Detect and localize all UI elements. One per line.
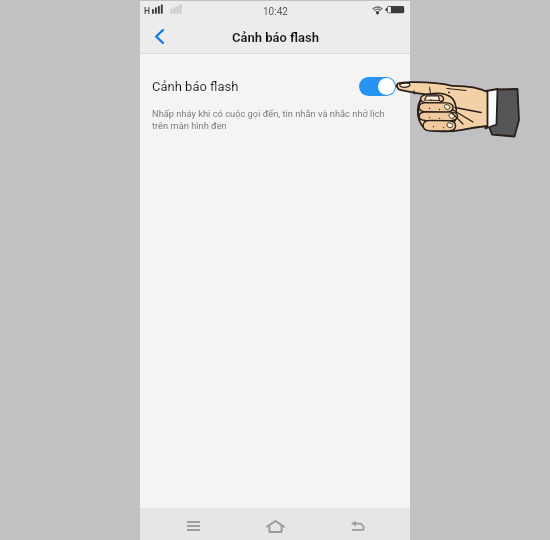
button[interactable]: Cảnh báo flash: [140, 70, 410, 103]
staticText: H: [144, 6, 151, 16]
staticText: Cảnh báo flash: [152, 79, 239, 94]
button[interactable]: Home: [253, 511, 297, 540]
button[interactable]: Back: [145, 22, 173, 50]
button[interactable]: Flash alert toggle: [359, 77, 396, 96]
button[interactable]: Back: [335, 512, 379, 540]
staticText: 10:42: [263, 6, 288, 18]
staticText: Cảnh báo flash: [232, 30, 319, 45]
staticText: Nhấp nháy khi có cuộc gọi đến, tin nhắn …: [152, 108, 401, 131]
button[interactable]: Menu: [171, 511, 215, 540]
